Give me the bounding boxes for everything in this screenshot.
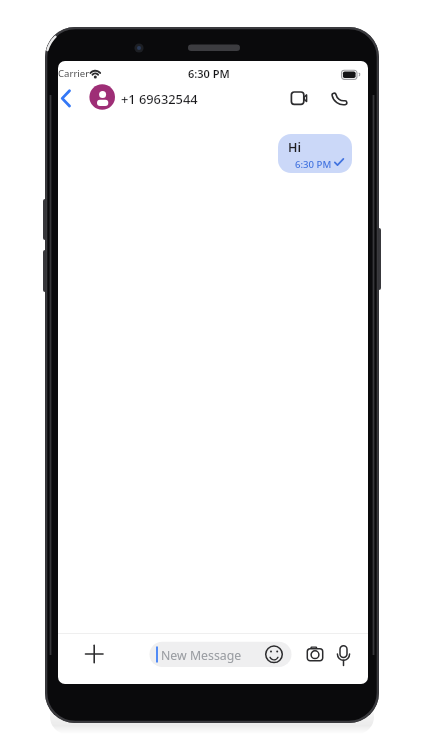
staticText: Carrier: [58, 67, 90, 80]
button[interactable]: [286, 85, 312, 111]
staticText: 6:30 PM: [188, 66, 230, 81]
staticText: New Message: [161, 647, 242, 664]
staticText: 6:30 PM: [295, 158, 332, 171]
button[interactable]: [331, 642, 355, 666]
button[interactable]: [87, 83, 202, 112]
staticText: +1 69632544: [121, 90, 198, 107]
button[interactable]: [82, 641, 107, 667]
button[interactable]: [263, 643, 285, 665]
button[interactable]: [303, 642, 327, 666]
button[interactable]: [58, 84, 84, 112]
button[interactable]: [150, 642, 292, 667]
staticText: Hi: [288, 139, 301, 156]
button[interactable]: [328, 85, 354, 113]
